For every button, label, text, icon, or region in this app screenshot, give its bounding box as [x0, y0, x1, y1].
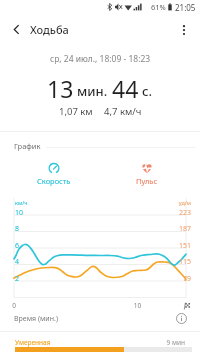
- staticText: ср, 24 июл., 18:09 - 18:23: [50, 53, 151, 65]
- staticText: Умеренная: [15, 338, 51, 347]
- staticText: Ходьба: [30, 22, 69, 37]
- staticText: Время (мин.): [14, 314, 58, 324]
- staticText: 4: [15, 257, 20, 267]
- button[interactable]: Finish: [181, 300, 192, 311]
- staticText: 21:05: [175, 2, 196, 13]
- staticText: График: [14, 141, 41, 151]
- staticText: 6: [15, 241, 20, 251]
- staticText: Скорость: [37, 176, 71, 186]
- staticText: 151: [170, 241, 191, 251]
- staticText: 115: [170, 257, 191, 267]
- button[interactable]: Пульс: [119, 162, 175, 188]
- staticText: 0: [11, 301, 17, 310]
- button[interactable]: More options: [172, 18, 195, 41]
- staticText: 79: [170, 274, 191, 284]
- staticText: Пульс: [136, 176, 158, 186]
- staticText: 1,07 км: [59, 105, 93, 118]
- staticText: 10: [15, 208, 24, 218]
- staticText: 44: [112, 73, 139, 104]
- staticText: 4,7 км/ч: [104, 105, 142, 118]
- staticText: 8: [15, 224, 20, 234]
- staticText: 13: [47, 73, 74, 104]
- staticText: 2: [15, 274, 20, 284]
- staticText: км/ч: [15, 199, 28, 206]
- staticText: 187: [170, 224, 191, 234]
- staticText: 10: [132, 301, 143, 310]
- button[interactable]: Скорость: [26, 162, 82, 188]
- staticText: 9 мин: [155, 338, 185, 347]
- staticText: мин.: [77, 82, 108, 100]
- staticText: уд/м: [170, 199, 191, 206]
- button[interactable]: Info: [174, 311, 189, 326]
- staticText: 223: [170, 208, 191, 218]
- staticText: 61%: [151, 2, 166, 12]
- staticText: с.: [142, 82, 153, 100]
- button[interactable]: Back: [5, 18, 28, 41]
